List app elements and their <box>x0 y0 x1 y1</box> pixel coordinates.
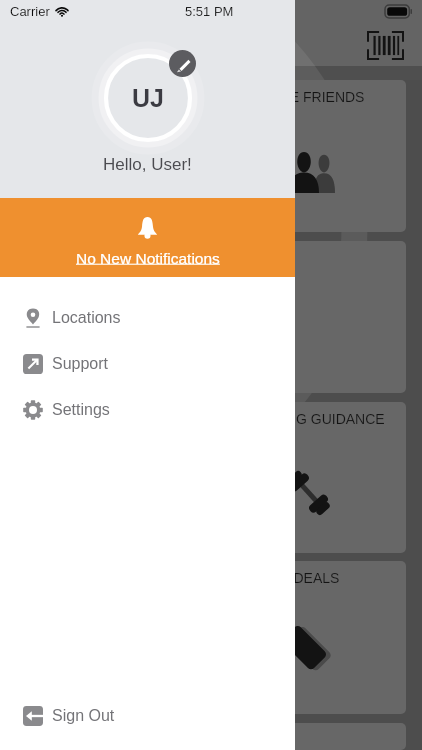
staticText: Hello, User! <box>103 155 192 174</box>
staticText: UJ <box>132 84 164 112</box>
staticText: Settings <box>52 401 110 419</box>
button[interactable] <box>240 723 406 750</box>
button[interactable]: Sign Out <box>0 693 295 739</box>
button[interactable] <box>240 241 406 393</box>
staticText: 5:51 PM <box>185 4 234 19</box>
staticText: Locations <box>52 309 121 327</box>
staticText: Carrier <box>10 4 50 19</box>
button[interactable]: Settings <box>0 387 295 433</box>
button[interactable]: Scan barcode <box>364 28 406 62</box>
button[interactable]: No New Notifications <box>0 198 295 277</box>
button[interactable]: Locations <box>0 295 295 341</box>
staticText: SPECIAL DEALS <box>240 570 340 586</box>
button[interactable]: TRAINING GUIDANCE <box>240 402 406 553</box>
staticText: Sign Out <box>52 707 115 725</box>
button[interactable]: Edit profile <box>169 50 196 77</box>
staticText: INVITE FRIENDS <box>254 89 365 105</box>
button[interactable]: INVITE FRIENDS <box>240 80 406 232</box>
button[interactable]: SPECIAL DEALS <box>240 561 406 714</box>
staticText: Support <box>52 355 109 373</box>
staticText: TRAINING GUIDANCE <box>240 411 385 427</box>
button[interactable]: Support <box>0 341 295 387</box>
staticText: No New Notifications <box>76 250 220 267</box>
